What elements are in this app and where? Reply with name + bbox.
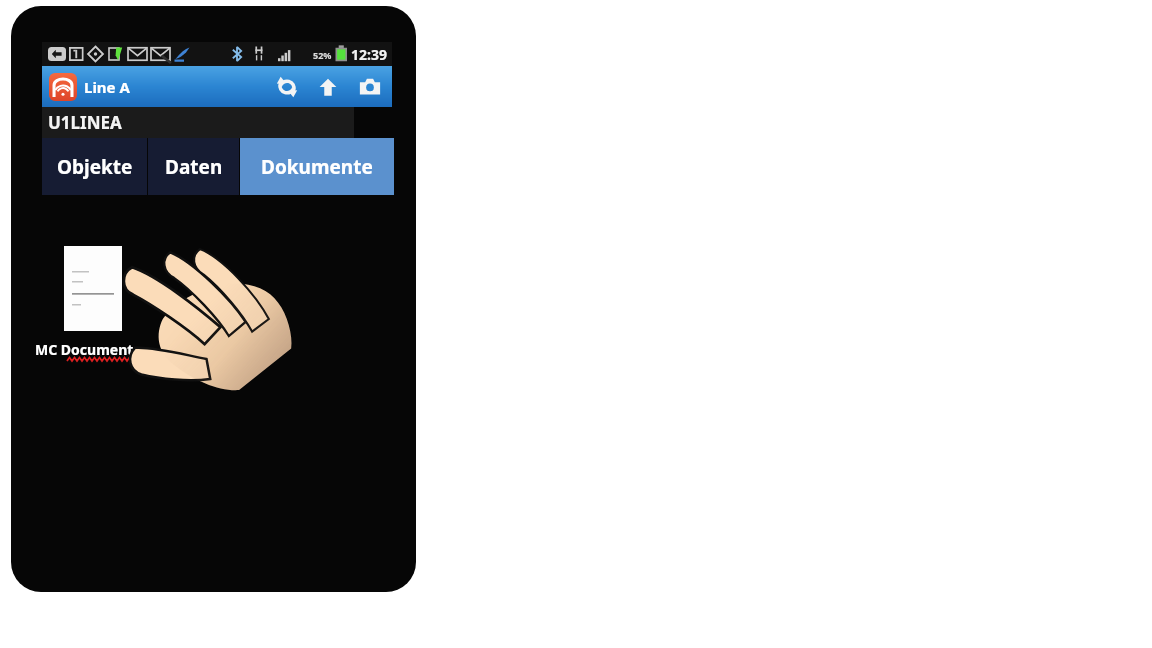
button[interactable]: Line A xyxy=(49,73,130,101)
button[interactable]: Camera xyxy=(348,66,392,107)
button[interactable]: Refresh xyxy=(266,66,307,107)
button[interactable]: MC Document xyxy=(33,246,134,359)
staticText: MC Document xyxy=(35,340,134,359)
button[interactable]: Dokumente xyxy=(240,138,394,195)
staticText: 52% xyxy=(313,49,332,61)
staticText: Objekte xyxy=(57,154,133,180)
staticText: Dokumente xyxy=(261,154,373,180)
staticText: 12:39 xyxy=(351,45,387,64)
staticText: Daten xyxy=(165,154,223,180)
button[interactable]: Upload xyxy=(307,66,348,107)
button[interactable]: Daten xyxy=(148,138,239,195)
button[interactable]: Objekte xyxy=(42,138,147,195)
staticText: U1LINEA xyxy=(48,111,122,134)
staticText: Line A xyxy=(84,77,130,97)
